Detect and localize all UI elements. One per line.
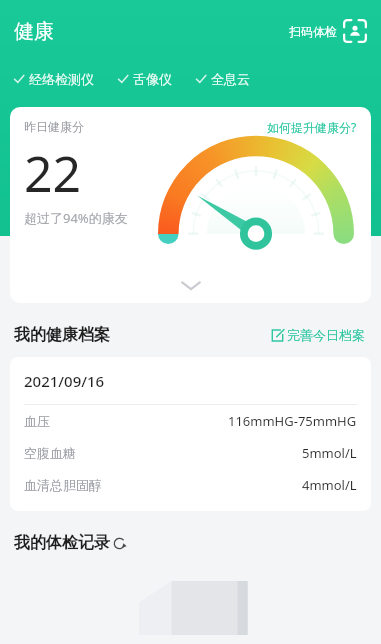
button[interactable]: 刷新 xyxy=(113,537,126,550)
button[interactable]: 舌像仪 xyxy=(116,69,174,89)
button[interactable]: 昨日健康分 xyxy=(10,107,371,303)
staticText: 舌像仪 xyxy=(133,71,172,87)
staticText: 超过了94%的康友 xyxy=(24,209,128,227)
other: 展开 xyxy=(181,280,201,291)
staticText: 我的体检记录 xyxy=(14,533,110,553)
staticText: 5mmol/L xyxy=(302,444,357,462)
staticText: 4mmol/L xyxy=(302,476,357,494)
staticText: 健康 xyxy=(14,19,54,44)
button[interactable]: 完善今日档案 xyxy=(269,325,367,345)
button[interactable]: 扫码体检 xyxy=(285,15,371,47)
staticText: 2021/09/16 xyxy=(24,371,105,391)
staticText: 我的健康档案 xyxy=(14,325,110,345)
staticText: 血压 xyxy=(24,413,50,429)
staticText: 经络检测仪 xyxy=(29,71,94,87)
staticText: 全息云 xyxy=(211,71,250,87)
staticText: 昨日健康分 xyxy=(24,119,84,134)
staticText: 完善今日档案 xyxy=(287,327,365,343)
button[interactable]: 全息云 xyxy=(194,69,252,89)
staticText: 116mmHG-75mmHG xyxy=(228,412,357,430)
staticText: 血清总胆固醇 xyxy=(24,477,102,493)
staticText: 空腹血糖 xyxy=(24,445,76,461)
button[interactable]: 2021/09/16 xyxy=(10,357,371,511)
staticText: 22 xyxy=(24,139,82,207)
button[interactable]: 如何提升健康分? xyxy=(267,119,357,135)
button[interactable]: 经络检测仪 xyxy=(12,69,96,89)
staticText: 扫码体检 xyxy=(289,24,337,39)
